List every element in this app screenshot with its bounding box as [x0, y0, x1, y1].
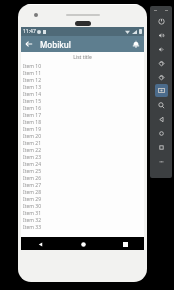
- staticText: Item 14: [23, 91, 42, 98]
- button[interactable]: Item 16: [21, 105, 144, 112]
- staticText: Item 19: [23, 126, 42, 133]
- staticText: Item 17: [23, 112, 42, 119]
- button[interactable]: Volume down: [155, 42, 168, 56]
- button[interactable]: Power: [155, 14, 168, 28]
- button[interactable]: Back: [35, 239, 45, 249]
- button[interactable]: Item 13: [21, 84, 144, 91]
- button[interactable]: Item 12: [21, 77, 144, 84]
- button[interactable]: Item 22: [21, 147, 144, 154]
- button[interactable]: Rotate right: [155, 70, 168, 84]
- button[interactable]: Item 32: [21, 217, 144, 224]
- staticText: Item 22: [23, 147, 42, 154]
- button[interactable]: Item 19: [21, 126, 144, 133]
- staticText: Item 10: [23, 63, 42, 70]
- staticText: Item 11: [23, 70, 42, 77]
- button[interactable]: Item 15: [21, 98, 144, 105]
- button[interactable]: Item 31: [21, 210, 144, 217]
- button[interactable]: Item 33: [21, 224, 144, 231]
- button[interactable]: Item 20: [21, 133, 144, 140]
- button[interactable]: Home: [78, 239, 88, 249]
- staticText: Item 18: [23, 119, 42, 126]
- button[interactable]: Item 17: [21, 112, 144, 119]
- staticText: Item 16: [23, 105, 42, 112]
- button[interactable]: Notifications: [128, 36, 144, 52]
- staticText: Item 26: [23, 175, 42, 182]
- button[interactable]: Item 14: [21, 91, 144, 98]
- button[interactable]: Volume up: [155, 28, 168, 42]
- button[interactable]: Item 18: [21, 119, 144, 126]
- button[interactable]: Item 21: [21, 140, 144, 147]
- button[interactable]: Item 11: [21, 70, 144, 77]
- button[interactable]: Back: [21, 36, 37, 52]
- button[interactable]: Overview: [155, 140, 168, 154]
- staticText: Item 20: [23, 133, 42, 140]
- staticText: Item 29: [23, 196, 42, 203]
- button[interactable]: Item 23: [21, 154, 144, 161]
- staticText: Item 21: [23, 140, 42, 147]
- button[interactable]: Home: [155, 126, 168, 140]
- button[interactable]: Take screenshot: [155, 84, 168, 97]
- staticText: Item 12: [23, 77, 42, 84]
- staticText: Item 30: [23, 203, 42, 210]
- staticText: Item 25: [23, 168, 42, 175]
- button[interactable]: Item 28: [21, 189, 144, 196]
- staticText: Item 24: [23, 161, 42, 168]
- button[interactable]: More: [155, 154, 168, 168]
- button[interactable]: Item 29: [21, 196, 144, 203]
- button[interactable]: Zoom: [155, 98, 168, 112]
- button[interactable]: Item 30: [21, 203, 144, 210]
- staticText: Mobikul: [40, 39, 71, 50]
- button[interactable]: Item 26: [21, 175, 144, 182]
- staticText: Item 23: [23, 154, 42, 161]
- staticText: Item 27: [23, 182, 42, 189]
- staticText: Item 32: [23, 217, 42, 224]
- staticText: 11:47: [23, 28, 36, 35]
- staticText: Item 28: [23, 189, 42, 196]
- button[interactable]: Back: [155, 112, 168, 126]
- button[interactable]: Item 25: [21, 168, 144, 175]
- staticText: List title: [21, 54, 144, 61]
- button[interactable]: Item 24: [21, 161, 144, 168]
- button[interactable]: Recent apps: [120, 239, 130, 249]
- button[interactable]: Rotate left: [155, 56, 168, 70]
- button[interactable]: Item 10: [21, 63, 144, 70]
- staticText: Item 33: [23, 224, 42, 231]
- button[interactable]: Item 27: [21, 182, 144, 189]
- staticText: Item 31: [23, 210, 42, 217]
- staticText: Item 15: [23, 98, 42, 105]
- staticText: Item 13: [23, 84, 42, 91]
